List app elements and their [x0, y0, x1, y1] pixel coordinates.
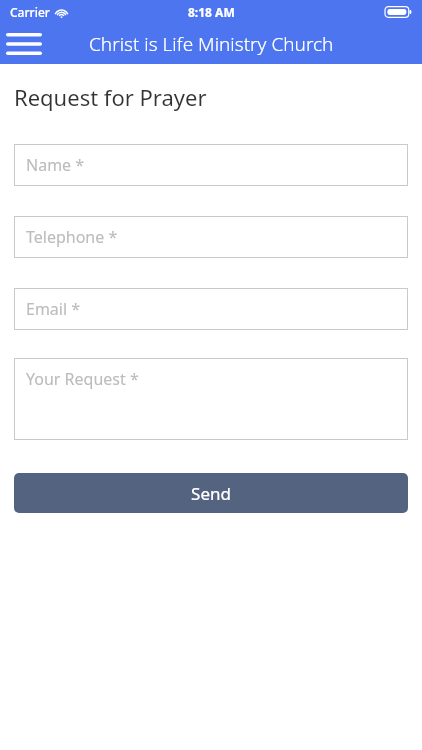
staticText: Email * — [26, 298, 81, 320]
staticText: Carrier — [10, 4, 50, 20]
button[interactable]: Name * — [14, 144, 408, 186]
staticText: Name * — [26, 154, 85, 176]
staticText: Christ is Life Ministry Church — [89, 31, 334, 57]
button[interactable]: Send — [14, 473, 408, 513]
staticText: Send — [191, 482, 231, 505]
staticText: Telephone * — [26, 226, 118, 248]
button[interactable]: Telephone * — [14, 216, 408, 258]
button[interactable]: Email * — [14, 288, 408, 330]
button[interactable]: Your Request * — [14, 358, 408, 440]
staticText: Request for Prayer — [14, 82, 207, 112]
staticText: Your Request * — [26, 368, 139, 390]
button[interactable]: Open navigation menu — [0, 24, 48, 64]
staticText: 8:18 AM — [188, 4, 235, 20]
